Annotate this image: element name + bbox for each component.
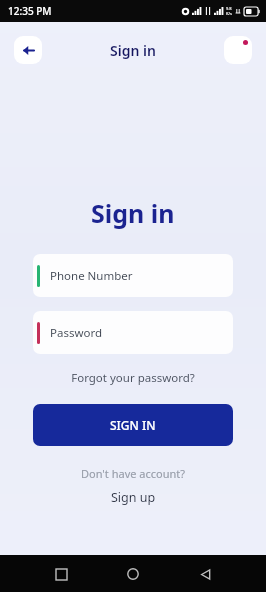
button[interactable]: Forgot your password? bbox=[65, 368, 201, 388]
staticText: Phone Number bbox=[50, 268, 133, 284]
button[interactable]: Notifications bbox=[224, 36, 252, 64]
button[interactable]: Password bbox=[33, 311, 233, 354]
staticText: Don't have account? bbox=[81, 466, 186, 481]
staticText: Sign in bbox=[91, 196, 175, 230]
button[interactable]: Back bbox=[14, 36, 42, 64]
staticText: 12:35 PM bbox=[8, 4, 52, 18]
button[interactable]: Home bbox=[120, 561, 146, 587]
staticText: SIGN IN bbox=[110, 417, 156, 433]
button[interactable]: Recent apps bbox=[48, 561, 74, 587]
button[interactable]: Back bbox=[192, 561, 218, 587]
staticText: Password bbox=[50, 325, 103, 341]
button[interactable]: SIGN IN bbox=[33, 404, 233, 446]
button[interactable]: Sign up bbox=[103, 487, 164, 508]
staticText: 9.8 bbox=[226, 6, 232, 11]
button[interactable]: Phone Number bbox=[33, 254, 233, 297]
staticText: K/s bbox=[226, 11, 232, 16]
staticText: Sign in bbox=[110, 41, 156, 60]
